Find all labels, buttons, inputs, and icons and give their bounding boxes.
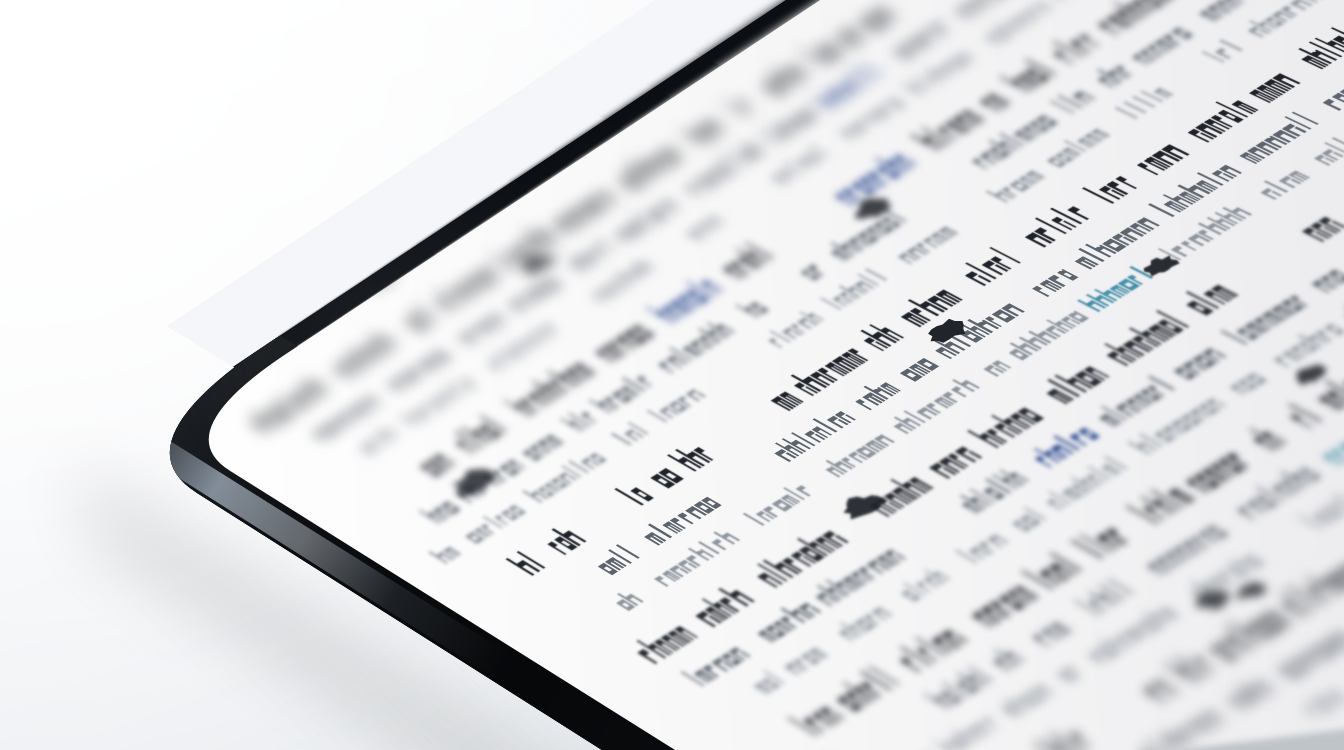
button[interactable]: Phone displaying a list of messages [0, 0, 1344, 750]
